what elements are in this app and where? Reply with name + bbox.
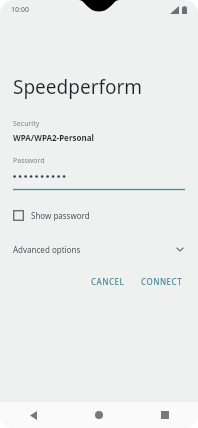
staticText: Show password	[31, 210, 90, 221]
button[interactable]	[13, 171, 185, 190]
button[interactable]: Back	[0, 402, 66, 428]
button[interactable]: CONNECT	[135, 272, 189, 291]
button[interactable]: Recent apps	[132, 402, 198, 428]
button[interactable]: Advanced options	[0, 238, 198, 260]
button[interactable]: Home	[66, 402, 132, 428]
staticText: WPA/WPA2-Personal	[13, 132, 94, 143]
button[interactable]: CANCEL	[85, 272, 131, 291]
staticText: Speedperform	[13, 74, 143, 100]
staticText: CANCEL	[91, 276, 125, 287]
staticText: Advanced options	[13, 244, 81, 255]
staticText: Password	[13, 156, 45, 166]
staticText: Security	[13, 119, 40, 129]
staticText: CONNECT	[141, 276, 183, 287]
staticText: 10:00	[11, 5, 29, 15]
button[interactable]: Show password	[11, 206, 90, 224]
